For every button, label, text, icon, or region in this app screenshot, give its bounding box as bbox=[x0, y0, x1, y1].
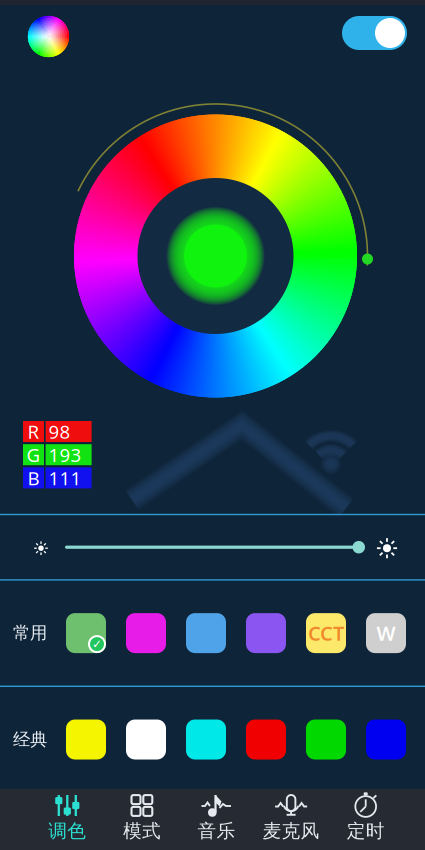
button[interactable]: 麦克风 bbox=[254, 786, 328, 850]
staticText: 模式 bbox=[123, 819, 161, 842]
button[interactable]: Colour preset bbox=[246, 613, 286, 653]
staticText: 音乐 bbox=[197, 819, 235, 842]
button[interactable]: Colour preset bbox=[186, 613, 226, 653]
staticText: 111 bbox=[49, 465, 82, 490]
button[interactable]: CCT bbox=[306, 613, 346, 653]
button[interactable]: W bbox=[366, 613, 406, 653]
staticText: 193 bbox=[49, 442, 82, 467]
button[interactable]: Power bbox=[342, 16, 407, 50]
button[interactable]: Colour preset bbox=[246, 719, 286, 759]
staticText: W bbox=[376, 620, 395, 646]
button[interactable]: 定时 bbox=[328, 786, 403, 850]
button[interactable]: Colour preset bbox=[306, 719, 346, 759]
button[interactable]: 模式 bbox=[105, 786, 179, 850]
staticText: ✓ bbox=[92, 637, 102, 651]
button[interactable]: Colour preset bbox=[66, 719, 106, 759]
button[interactable]: Colour preset bbox=[126, 719, 166, 759]
staticText: 常用 bbox=[13, 622, 47, 644]
staticText: CCT bbox=[308, 620, 344, 646]
staticText: 经典 bbox=[13, 729, 47, 750]
button[interactable]: Colour preset bbox=[126, 613, 166, 653]
button[interactable]: 音乐 bbox=[179, 786, 254, 850]
button[interactable]: 调色 bbox=[30, 786, 105, 850]
button[interactable]: Colour mode bbox=[0, 0, 425, 75]
button[interactable]: Colour preset bbox=[366, 719, 406, 759]
staticText: G bbox=[26, 442, 40, 467]
button[interactable]: Colour preset bbox=[66, 613, 106, 653]
staticText: 麦克风 bbox=[263, 819, 320, 842]
staticText: 调色 bbox=[48, 819, 86, 842]
staticText: 98 bbox=[49, 419, 71, 444]
staticText: B bbox=[27, 465, 39, 490]
staticText: 定时 bbox=[347, 819, 385, 842]
button[interactable]: Colour preset bbox=[186, 719, 226, 759]
staticText: R bbox=[27, 419, 39, 444]
